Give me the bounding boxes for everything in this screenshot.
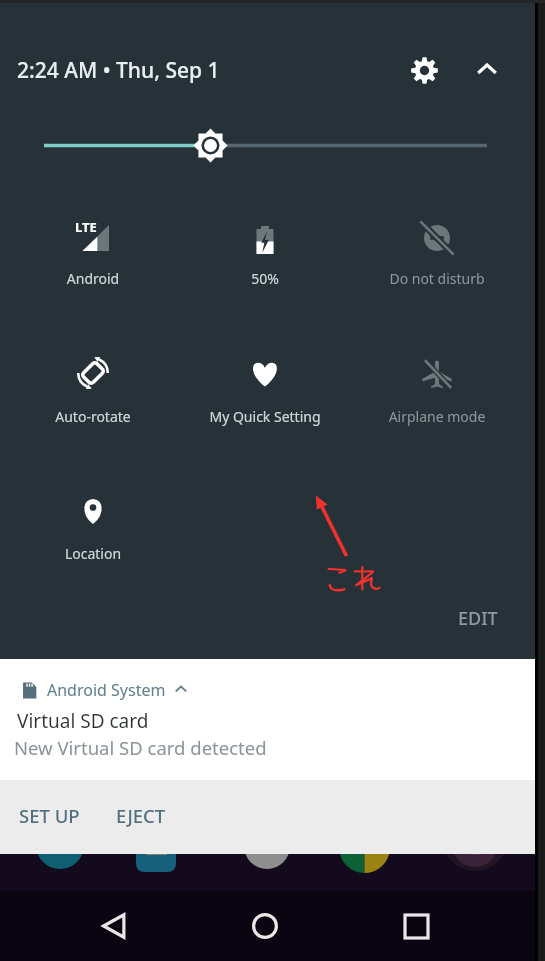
staticText: EJECT — [116, 803, 166, 828]
staticText: Android — [8, 269, 178, 288]
staticText: Virtual SD card — [17, 708, 149, 734]
button[interactable]: Recents — [388, 898, 444, 954]
staticText: My Quick Setting — [180, 407, 350, 426]
staticText: EDIT — [458, 606, 498, 631]
button[interactable]: SET UP — [11, 795, 88, 836]
button[interactable]: EJECT — [108, 795, 174, 836]
button[interactable]: Home — [237, 898, 293, 954]
staticText: Android System — [47, 679, 166, 701]
button[interactable]: Android — [8, 190, 178, 300]
button[interactable]: Do not disturb — [352, 190, 522, 300]
staticText: これ — [322, 554, 382, 597]
staticText: 2:24 AM • Thu, Sep 1 — [17, 56, 220, 85]
button[interactable]: Android System — [0, 659, 535, 780]
staticText: Location — [8, 544, 178, 563]
staticText: 50% — [180, 269, 350, 288]
button[interactable]: Location — [8, 463, 178, 573]
staticText: Auto-rotate — [8, 407, 178, 426]
staticText: SET UP — [19, 803, 80, 828]
button[interactable]: Brightness — [30, 122, 505, 170]
button[interactable]: Collapse — [465, 48, 509, 92]
staticText: Airplane mode — [352, 407, 522, 426]
staticText: Do not disturb — [352, 269, 522, 288]
button[interactable]: My Quick Setting — [180, 325, 350, 435]
button[interactable]: 50% — [180, 190, 350, 300]
button[interactable]: EDIT — [444, 594, 512, 643]
button[interactable]: Back — [86, 898, 142, 954]
staticText: New Virtual SD card detected — [14, 735, 267, 760]
button[interactable]: Settings — [402, 48, 446, 92]
button[interactable]: Airplane mode — [352, 325, 522, 435]
staticText: LTE — [75, 218, 97, 236]
button[interactable]: Auto-rotate — [8, 325, 178, 435]
